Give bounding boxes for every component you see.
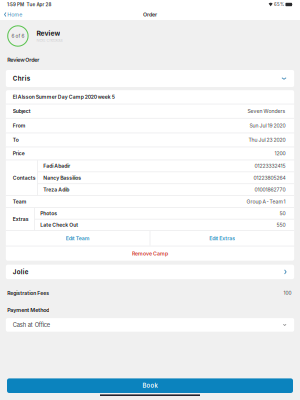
- button[interactable]: Chris: [0, 70, 300, 87]
- staticText: 01223332415: [255, 163, 286, 169]
- staticText: Sun Jul 19 2020: [250, 122, 286, 129]
- staticText: Edit Extras: [209, 235, 235, 241]
- staticText: Registration Fees: [7, 290, 49, 296]
- button[interactable]: Jolie: [0, 265, 300, 279]
- staticText: 1200: [275, 150, 286, 156]
- staticText: Order: [143, 11, 157, 18]
- staticText: 550: [277, 222, 286, 228]
- staticText: Tue Apr 28: [27, 2, 52, 7]
- staticText: Seven Wonders: [248, 108, 286, 114]
- staticText: To: [13, 137, 19, 143]
- staticText: 65%: [274, 2, 284, 7]
- staticText: Jolie: [13, 268, 29, 276]
- staticText: Review Order: [7, 56, 39, 63]
- staticText: Remove Camp: [132, 250, 168, 257]
- staticText: 1:59 PM: [7, 2, 24, 7]
- staticText: Treza Adib: [43, 187, 69, 193]
- staticText: 01001862770: [255, 187, 286, 193]
- staticText: Group A - Team 1: [247, 199, 286, 205]
- staticText: Thu Jul 23 2020: [249, 137, 286, 143]
- staticText: 01223805264: [254, 175, 286, 181]
- staticText: 50: [280, 210, 286, 216]
- staticText: Next: Checkout: [36, 38, 62, 43]
- button[interactable]: Cash at Office: [0, 318, 300, 332]
- staticText: Contacts: [13, 175, 36, 181]
- staticText: Team: [13, 199, 27, 205]
- button[interactable]: Edit Extras: [150, 231, 294, 246]
- staticText: El Alsson Summer Day Camp 2020 week 5: [13, 94, 115, 100]
- button[interactable]: Remove Camp: [6, 246, 294, 261]
- button[interactable]: Edit Team: [6, 231, 150, 246]
- staticText: Nancy Bassilios: [43, 175, 81, 181]
- staticText: Review: [36, 29, 60, 37]
- staticText: Payment Method: [7, 307, 49, 313]
- staticText: Book: [142, 382, 157, 389]
- staticText: 6 of 6: [11, 33, 24, 39]
- staticText: Edit Team: [66, 235, 90, 241]
- button[interactable]: Home: [0, 9, 27, 20]
- staticText: Subject: [13, 108, 31, 114]
- button[interactable]: Book: [7, 378, 293, 393]
- staticText: Price: [13, 150, 25, 156]
- staticText: Home: [7, 11, 22, 18]
- staticText: Photos: [40, 210, 57, 216]
- staticText: Cash at Office: [13, 321, 50, 328]
- staticText: Late Check Out: [40, 222, 78, 228]
- staticText: 100: [283, 290, 291, 296]
- staticText: Fadi Abadir: [43, 163, 70, 169]
- staticText: From: [13, 122, 26, 129]
- staticText: Extras: [13, 216, 29, 222]
- staticText: Chris: [13, 75, 30, 82]
